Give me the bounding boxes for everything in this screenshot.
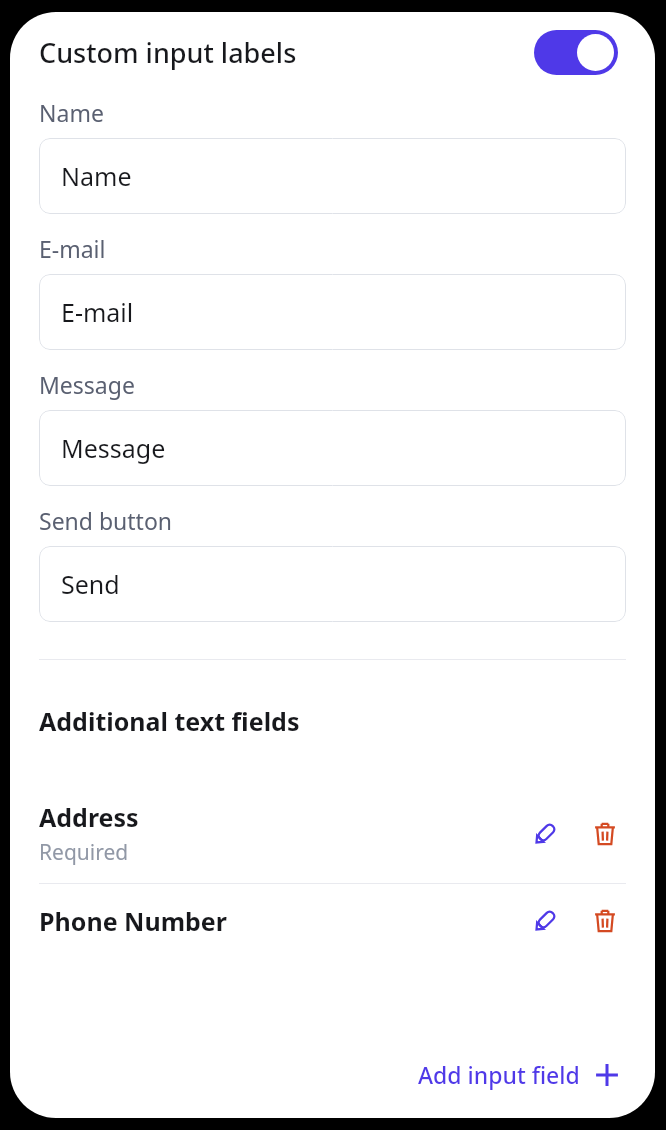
staticText: Message: [61, 431, 166, 465]
staticText: Custom input labels: [39, 34, 534, 71]
button[interactable]: Delete: [584, 813, 626, 855]
button[interactable]: Edit: [524, 813, 566, 855]
button[interactable]: Send: [39, 546, 626, 622]
staticText: Send: [61, 567, 120, 601]
button[interactable]: Delete: [584, 900, 626, 942]
button[interactable]: Name: [39, 138, 626, 214]
staticText: Send button: [39, 505, 173, 536]
staticText: Name: [39, 97, 104, 128]
staticText: Name: [61, 159, 132, 193]
staticText: Required: [39, 838, 129, 867]
staticText: E-mail: [39, 233, 106, 264]
button[interactable]: Add input field: [412, 1053, 626, 1096]
button[interactable]: Edit: [524, 900, 566, 942]
button[interactable]: Phone Number: [10, 884, 655, 958]
staticText: Message: [39, 369, 135, 400]
button[interactable]: Address: [10, 784, 655, 883]
staticText: E-mail: [61, 295, 134, 329]
button[interactable]: E-mail: [39, 274, 626, 350]
staticText: Additional text fields: [39, 704, 300, 738]
staticText: Add input field: [418, 1059, 580, 1090]
button[interactable]: Message: [39, 410, 626, 486]
button[interactable]: Toggle custom input labels: [534, 30, 618, 75]
staticText: Address: [39, 800, 139, 834]
staticText: Phone Number: [39, 904, 227, 938]
